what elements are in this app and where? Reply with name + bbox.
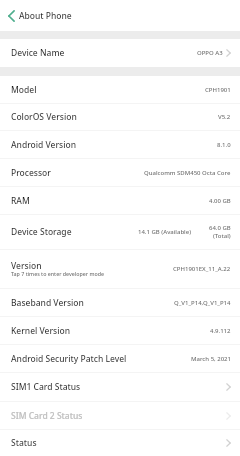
staticText: Processor	[11, 167, 51, 179]
staticText: 14.1 GB (Available)	[138, 228, 192, 236]
staticText: Tap 7 times to enter developer mode	[11, 270, 105, 277]
staticText: Qualcomm SDM450 Octa Core	[144, 169, 231, 177]
button[interactable]: SIM1 Card Status	[0, 373, 240, 402]
staticText: Q_V1_P14,Q_V1_P14	[174, 299, 231, 307]
staticText: RAM	[11, 195, 30, 207]
staticText: Android Security Patch Level	[11, 353, 127, 365]
staticText: Device Name	[11, 47, 65, 59]
button[interactable]: Status	[0, 430, 240, 456]
button[interactable]: Device Name	[0, 39, 240, 67]
button[interactable]: Back	[3, 5, 19, 27]
staticText: About Phone	[19, 10, 72, 22]
staticText: Kernel Version	[11, 325, 71, 337]
staticText: Model	[11, 84, 37, 96]
staticText: SIM Card 2 Status	[11, 410, 83, 422]
button[interactable]: Model	[0, 76, 240, 104]
staticText: 8.1.0	[217, 141, 231, 149]
staticText: Android Version	[11, 139, 77, 151]
button[interactable]: Processor	[0, 159, 240, 187]
button[interactable]: Kernel Version	[0, 317, 240, 345]
staticText: SIM1 Card Status	[11, 381, 81, 393]
staticText: Baseband Version	[11, 297, 84, 309]
staticText: Version	[11, 260, 42, 272]
staticText: March 5, 2021	[191, 355, 231, 363]
staticText: CPH1901	[205, 86, 231, 94]
button[interactable]: SIM Card 2 Status	[0, 402, 240, 430]
staticText: 4.9.112	[210, 327, 231, 335]
staticText: V5.2	[218, 113, 231, 121]
staticText: CPH1901EX_11_A.22	[173, 265, 231, 273]
staticText: OPPO A3	[197, 49, 223, 57]
button[interactable]: Device Storage	[0, 215, 240, 250]
button[interactable]: Baseband Version	[0, 289, 240, 317]
staticText: 4.00 GB	[209, 197, 231, 205]
staticText: (Total)	[213, 232, 231, 240]
button[interactable]: Version	[0, 250, 240, 289]
staticText: 64.0 GB	[209, 224, 231, 232]
button[interactable]: ColorOS Version	[0, 104, 240, 131]
button[interactable]: Android Version	[0, 131, 240, 159]
button[interactable]: RAM	[0, 187, 240, 215]
staticText: Device Storage	[11, 226, 72, 238]
button[interactable]: Android Security Patch Level	[0, 345, 240, 373]
staticText: Status	[11, 437, 37, 449]
staticText: ColorOS Version	[11, 111, 77, 123]
